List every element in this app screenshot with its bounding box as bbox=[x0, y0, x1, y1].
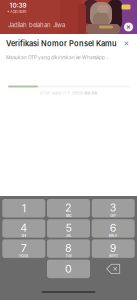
staticText: 00:36 bbox=[84, 91, 97, 95]
button[interactable]: 4 bbox=[2, 219, 45, 238]
button[interactable]: 3 bbox=[92, 199, 135, 217]
staticText: 9 bbox=[110, 242, 117, 255]
staticText: TUV bbox=[65, 254, 71, 258]
button[interactable]: 2 bbox=[47, 199, 90, 217]
staticText: 7 bbox=[21, 242, 27, 255]
staticText: Verifikasi Nomor Ponsel Kamu bbox=[6, 39, 117, 48]
staticText: 8 bbox=[65, 242, 72, 255]
staticText: MNO bbox=[109, 234, 118, 238]
staticText: Kirim ulang OTP setelah bbox=[39, 91, 84, 95]
button[interactable]: 8 bbox=[47, 239, 90, 258]
button[interactable]: 0 bbox=[47, 260, 90, 278]
staticText: 3 bbox=[110, 201, 117, 214]
staticText: Masukan OTP yang dikirimkan ke WhatsApp … bbox=[6, 55, 109, 60]
button[interactable]: Delete bbox=[92, 260, 135, 278]
staticText: 5 bbox=[65, 221, 71, 234]
staticText: Jadilah belahan Jiwa bbox=[8, 21, 65, 29]
staticText: 10:39 bbox=[9, 2, 26, 9]
button[interactable]: 1 bbox=[2, 199, 45, 217]
staticText: PQRS bbox=[19, 254, 28, 258]
staticText: 6 bbox=[110, 221, 117, 234]
button[interactable]: 7 bbox=[2, 239, 45, 258]
staticText: 4 bbox=[20, 221, 27, 234]
button[interactable]: 9 bbox=[92, 239, 135, 258]
staticText: 2 bbox=[65, 201, 72, 214]
staticText: ABC bbox=[65, 214, 71, 218]
button[interactable]: 5 bbox=[47, 219, 90, 238]
staticText: WXYZ bbox=[109, 254, 118, 258]
button[interactable]: Close bbox=[122, 39, 131, 48]
staticText: GHI bbox=[21, 234, 26, 238]
button[interactable]: 6 bbox=[92, 219, 135, 238]
staticText: DEF bbox=[110, 214, 116, 218]
staticText: 0 bbox=[65, 262, 72, 275]
staticText: App Store bbox=[10, 9, 26, 14]
staticText: JKL bbox=[65, 234, 71, 238]
staticText: 1 bbox=[22, 202, 26, 215]
